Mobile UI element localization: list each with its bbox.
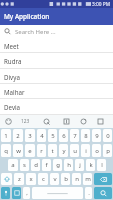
button[interactable]: i <box>81 144 90 157</box>
button[interactable]: s <box>20 159 29 171</box>
staticText: g <box>56 161 60 169</box>
staticText: 5 <box>51 132 55 140</box>
button[interactable]: Divya <box>0 69 113 84</box>
staticText: 7 <box>73 132 77 140</box>
button[interactable]: Emoji <box>2 115 14 128</box>
button[interactable]: 9 <box>92 129 101 142</box>
button[interactable]: g <box>53 159 62 171</box>
button[interactable]: Sticker <box>40 115 52 128</box>
staticText: e <box>28 147 32 155</box>
button[interactable]: f <box>42 159 51 171</box>
staticText: w <box>16 147 21 155</box>
button[interactable]: My Application <box>0 8 113 25</box>
button[interactable]: 1 <box>1 129 11 142</box>
button[interactable]: q <box>1 144 11 157</box>
button[interactable]: Devia <box>0 99 113 115</box>
button[interactable]: w <box>13 144 23 157</box>
staticText: k <box>89 161 93 169</box>
button[interactable]: 6 <box>59 129 68 142</box>
button[interactable]: Translate <box>12 187 21 199</box>
button[interactable]: Backspace <box>94 173 112 185</box>
button[interactable]: b <box>61 173 70 185</box>
staticText: Search Here ... <box>15 28 56 36</box>
button[interactable]: y <box>59 144 68 157</box>
button[interactable]: e <box>25 144 35 157</box>
staticText: x <box>29 175 33 183</box>
staticText: Divya <box>4 73 20 81</box>
staticText: s <box>23 161 26 169</box>
staticText: 4 <box>40 132 44 140</box>
button[interactable]: u <box>70 144 79 157</box>
button[interactable]: c <box>38 173 48 185</box>
staticText: 1 <box>4 132 8 140</box>
button[interactable]: Meet <box>0 38 113 53</box>
button[interactable]: o <box>92 144 101 157</box>
staticText: My Application <box>4 12 50 21</box>
button[interactable]: 5 <box>48 129 57 142</box>
staticText: n <box>75 175 79 183</box>
staticText: 123 <box>21 118 30 125</box>
staticText: . <box>88 189 90 197</box>
button[interactable]: Voice input <box>1 187 10 199</box>
button[interactable]: Space <box>32 187 83 199</box>
button[interactable]: l <box>97 159 106 171</box>
button[interactable]: z <box>14 173 24 185</box>
staticText: 8 <box>84 132 88 140</box>
staticText: 3 <box>28 132 32 140</box>
staticText: 3:00 PM <box>92 1 111 8</box>
button[interactable]: m <box>83 173 92 185</box>
staticText: 9 <box>95 132 99 140</box>
button[interactable]: 3 <box>25 129 35 142</box>
button[interactable]: k <box>86 159 95 171</box>
button[interactable]: , <box>23 187 30 199</box>
button[interactable]: x <box>26 173 36 185</box>
staticText: v <box>53 175 57 183</box>
button[interactable]: Rudra <box>0 53 113 69</box>
staticText: h <box>67 161 71 169</box>
button[interactable]: Search <box>0 25 113 38</box>
other: Search <box>0 25 15 38</box>
button[interactable]: h <box>64 159 73 171</box>
staticText: Devia <box>4 103 21 111</box>
button[interactable]: 7 <box>70 129 79 142</box>
staticText: m <box>85 175 91 183</box>
button[interactable]: Clipboard <box>60 115 72 128</box>
staticText: , <box>26 189 28 197</box>
staticText: Rudra <box>4 57 22 65</box>
staticText: o <box>95 147 99 155</box>
button[interactable]: 4 <box>37 129 46 142</box>
button[interactable]: . <box>85 187 92 199</box>
button[interactable]: 0 <box>103 129 112 142</box>
button[interactable]: t <box>48 144 57 157</box>
button[interactable]: Settings <box>94 115 106 128</box>
staticText: a <box>11 161 15 169</box>
staticText: Malhar <box>4 88 25 96</box>
staticText: y <box>62 147 66 155</box>
button[interactable]: r <box>37 144 46 157</box>
staticText: p <box>106 147 110 155</box>
staticText: l <box>101 161 103 169</box>
button[interactable]: 8 <box>81 129 90 142</box>
button[interactable]: d <box>31 159 40 171</box>
staticText: b <box>64 175 68 183</box>
button[interactable]: Shift <box>1 173 12 185</box>
staticText: 6 <box>62 132 66 140</box>
staticText: q <box>4 147 8 155</box>
button[interactable]: a <box>8 159 18 171</box>
button[interactable]: n <box>72 173 81 185</box>
staticText: i <box>85 147 87 155</box>
button[interactable]: 123 <box>19 115 32 128</box>
staticText: u <box>73 147 77 155</box>
staticText: 0 <box>106 132 110 140</box>
button[interactable]: Refresh <box>77 115 89 128</box>
staticText: z <box>18 175 21 183</box>
button[interactable]: p <box>103 144 112 157</box>
staticText: 2 <box>16 132 20 140</box>
button[interactable]: Search <box>94 187 112 199</box>
button[interactable]: 2 <box>13 129 23 142</box>
staticText: r <box>40 147 43 155</box>
button[interactable]: Malhar <box>0 84 113 99</box>
button[interactable]: j <box>75 159 84 171</box>
staticText: f <box>45 161 48 169</box>
button[interactable]: v <box>50 173 59 185</box>
